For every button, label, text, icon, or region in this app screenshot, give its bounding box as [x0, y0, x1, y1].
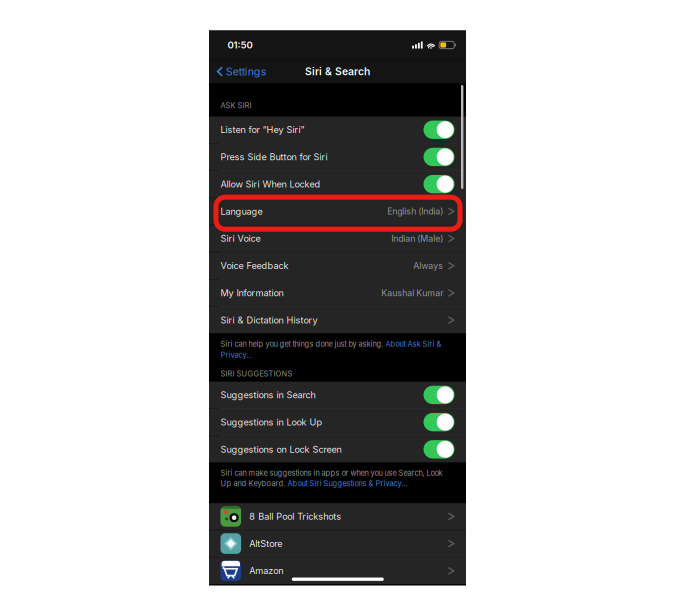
button[interactable]: Suggestions in Look Up — [209, 409, 466, 435]
staticText: Kaushal Kumar — [381, 288, 443, 298]
staticText: Voice Feedback — [220, 260, 288, 271]
staticText: Allow Siri When Locked — [220, 179, 320, 190]
staticText: 8 Ball Pool Trickshots — [249, 511, 341, 522]
staticText: Indian (Male) — [391, 233, 443, 244]
staticText: Suggestions on Lock Screen — [220, 444, 341, 455]
button[interactable]: Listen for “Hey Siri” — [209, 116, 466, 143]
staticText: Privacy... — [220, 351, 252, 360]
staticText: Amazon — [249, 565, 283, 576]
button[interactable]: Press Side Button for Siri — [209, 144, 466, 170]
button[interactable]: About Ask Siri & — [385, 339, 441, 348]
staticText: English (India) — [387, 206, 443, 217]
button[interactable]: Siri Voice — [209, 225, 466, 252]
button[interactable]: Siri & Dictation History — [209, 307, 466, 333]
button[interactable]: Amazon — [209, 557, 466, 584]
button[interactable]: AltStore — [209, 530, 466, 557]
staticText: Listen for “Hey Siri” — [220, 124, 304, 135]
staticText: My Information — [220, 287, 283, 298]
staticText: ASK SIRI — [220, 101, 251, 110]
staticText: Suggestions in Search — [220, 389, 315, 400]
staticText: Siri Voice — [220, 233, 260, 244]
staticText: Press Side Button for Siri — [220, 151, 327, 162]
staticText: Siri & Search — [305, 65, 370, 78]
button[interactable]: Language — [209, 198, 466, 225]
staticText: AltStore — [249, 538, 282, 549]
button[interactable]: Voice Feedback — [209, 252, 466, 279]
button[interactable]: Suggestions on Lock Screen — [209, 436, 466, 463]
staticText: Siri can help you get things done just b… — [220, 339, 385, 348]
staticText: 01:50 — [228, 39, 253, 51]
button[interactable]: Privacy... — [220, 351, 454, 360]
staticText: About Siri Suggestions & Privacy... — [287, 479, 407, 488]
staticText: Up and Keyboard. — [220, 479, 287, 488]
staticText: About Ask Siri & — [385, 339, 441, 348]
staticText: Siri can make suggestions in apps or whe… — [220, 469, 442, 478]
button[interactable]: Settings — [209, 59, 275, 83]
staticText: Siri & Dictation History — [220, 315, 317, 326]
button[interactable]: Suggestions in Search — [209, 382, 466, 408]
button[interactable]: About Siri Suggestions & Privacy... — [287, 479, 407, 488]
staticText: Language — [220, 206, 262, 217]
staticText: Settings — [226, 65, 267, 78]
staticText: Suggestions in Look Up — [220, 417, 322, 428]
button[interactable]: My Information — [209, 280, 466, 306]
staticText: Always — [413, 260, 443, 271]
button[interactable]: 8 Ball Pool Trickshots — [209, 503, 466, 530]
staticText: SIRI SUGGESTIONS — [220, 369, 292, 378]
button[interactable]: Allow Siri When Locked — [209, 171, 466, 197]
